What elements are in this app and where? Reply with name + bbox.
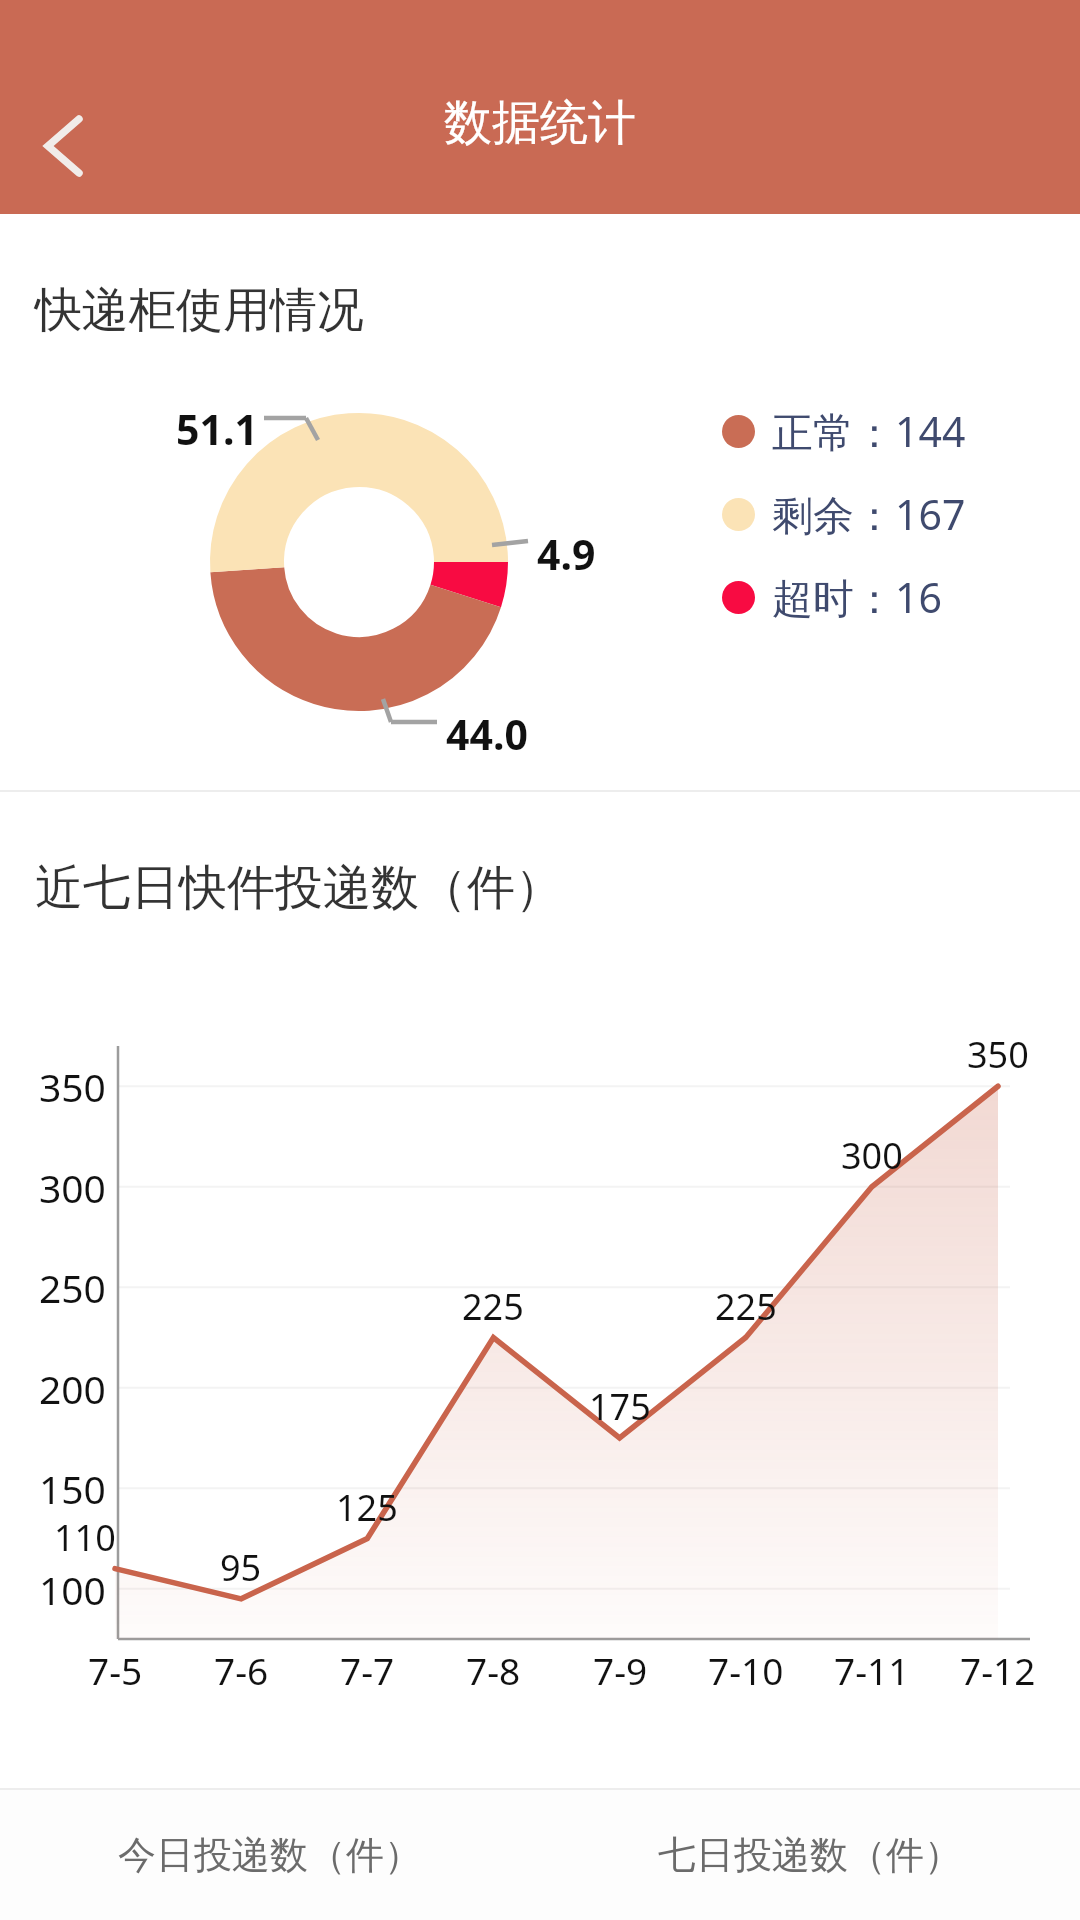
staticText: 4.9 <box>537 526 596 582</box>
button[interactable]: Back <box>12 95 114 197</box>
staticText: 剩余：167 <box>772 486 966 542</box>
staticText: 51.1 <box>176 401 258 457</box>
staticText: 175 <box>589 1382 651 1431</box>
staticText: 7-11 <box>834 1645 910 1695</box>
staticText: 7-7 <box>340 1645 395 1695</box>
staticText: 七日投递数（件） <box>658 1831 962 1879</box>
staticText: 7-10 <box>708 1645 784 1695</box>
staticText: 125 <box>336 1483 398 1532</box>
staticText: 95 <box>220 1543 262 1592</box>
staticText: 225 <box>462 1282 524 1331</box>
staticText: 350 <box>967 1030 1029 1079</box>
button[interactable]: 今日投递数（件） <box>0 1790 540 1920</box>
staticText: 44.0 <box>446 706 528 762</box>
staticText: 今日投递数（件） <box>118 1831 422 1879</box>
staticText: 150 <box>39 1462 106 1515</box>
staticText: 200 <box>39 1362 106 1415</box>
staticText: 超时：16 <box>772 569 942 625</box>
staticText: 快递柜使用情况 <box>35 281 364 340</box>
staticText: 350 <box>39 1060 106 1113</box>
button[interactable]: 七日投递数（件） <box>540 1790 1080 1920</box>
button[interactable]: 超时：16 <box>722 569 942 625</box>
staticText: 110 <box>54 1513 116 1562</box>
staticText: 7-6 <box>214 1645 269 1695</box>
staticText: 300 <box>39 1161 106 1214</box>
staticText: 正常：144 <box>772 403 966 459</box>
staticText: 7-9 <box>593 1645 648 1695</box>
button[interactable]: 剩余：167 <box>722 486 966 542</box>
staticText: 300 <box>841 1131 903 1180</box>
staticText: 100 <box>39 1563 106 1616</box>
button[interactable]: 正常：144 <box>722 403 966 459</box>
staticText: 近七日快件投递数（件） <box>35 858 563 918</box>
staticText: 225 <box>715 1282 777 1331</box>
staticText: 7-8 <box>466 1645 521 1695</box>
staticText: 250 <box>39 1261 106 1314</box>
staticText: 7-5 <box>88 1645 143 1695</box>
staticText: 数据统计 <box>444 93 636 153</box>
staticText: 7-12 <box>960 1645 1036 1695</box>
